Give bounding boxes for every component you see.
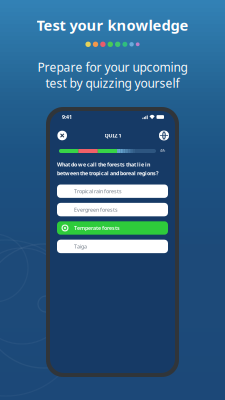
button[interactable]: Temperate forests: [57, 221, 168, 235]
staticText: Evergreen forests: [74, 206, 118, 213]
staticText: 9:41: [62, 113, 72, 121]
staticText: Prepare for your upcoming: [37, 59, 187, 75]
staticText: QUIZ 1: [105, 132, 122, 139]
staticText: Temperate forests: [74, 224, 120, 232]
staticText: Test your knowledge: [36, 15, 188, 35]
staticText: What do we call the forests that lie in: [57, 161, 150, 168]
button[interactable]: Change language: [158, 129, 170, 141]
staticText: 4/6: [160, 147, 165, 153]
button[interactable]: Taiga: [57, 240, 168, 253]
staticText: between the tropical and boreal regions?: [57, 170, 159, 177]
button[interactable]: Evergreen forests: [57, 203, 168, 216]
button[interactable]: Close quiz: [56, 129, 68, 141]
staticText: test by quizzing yourself: [45, 75, 179, 91]
staticText: Taiga: [74, 243, 87, 250]
staticText: Tropical rain forests: [74, 188, 122, 195]
button[interactable]: Tropical rain forests: [57, 184, 168, 198]
